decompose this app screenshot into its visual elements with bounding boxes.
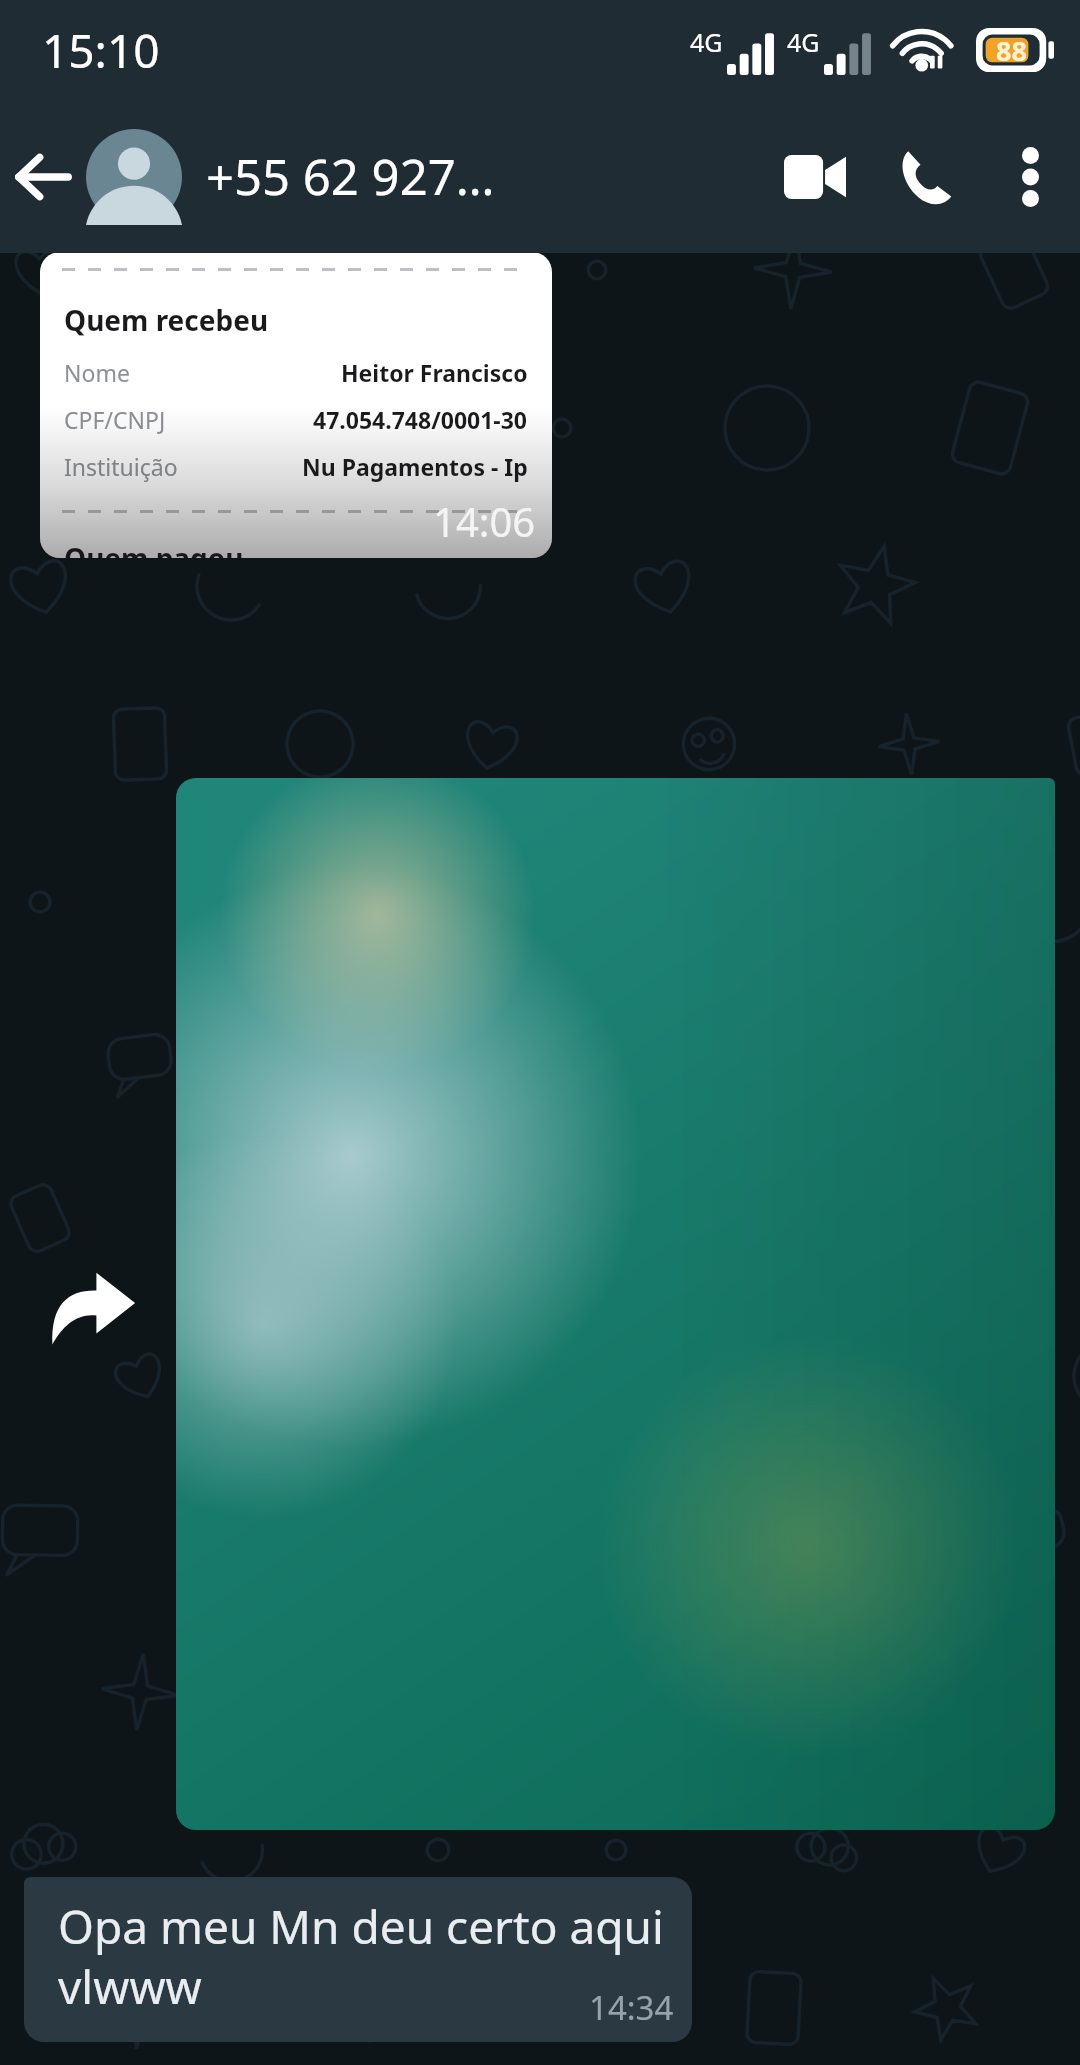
staticText: 4G <box>690 25 723 59</box>
staticText: 15:10 <box>42 19 160 82</box>
staticText: Heitor Francisco <box>341 357 528 388</box>
staticText: Opa meu Mn deu certo aqui vlwww <box>58 1895 664 2018</box>
staticText: 4G <box>787 25 820 59</box>
staticText: +55 62 927… <box>206 143 495 210</box>
button[interactable]: More options <box>980 100 1080 253</box>
staticText: CPF/CNPJ <box>64 404 166 435</box>
staticText: 14:34 <box>589 1985 674 2030</box>
button[interactable] <box>176 778 1055 1830</box>
button[interactable]: Voice call <box>870 100 980 253</box>
staticText: Quem pagou <box>64 539 244 558</box>
staticText: Instituição <box>64 451 178 482</box>
button[interactable]: Video call <box>760 100 870 253</box>
staticText: 14:06 <box>433 494 536 548</box>
button[interactable]: Opa meu Mn deu certo aqui vlwww <box>24 1877 692 2042</box>
staticText: Quem recebeu <box>64 301 269 339</box>
staticText: Nu Pagamentos - Ip <box>302 451 528 482</box>
staticText: Nome <box>64 357 130 388</box>
staticText: 47.054.748/0001-30 <box>313 404 528 435</box>
button[interactable]: Quem recebeu <box>40 252 552 558</box>
staticText: 88 <box>996 32 1027 69</box>
button[interactable]: Forwarded <box>48 1268 136 1346</box>
button[interactable]: +55 62 927… <box>86 100 760 253</box>
button[interactable]: Back <box>0 100 86 253</box>
